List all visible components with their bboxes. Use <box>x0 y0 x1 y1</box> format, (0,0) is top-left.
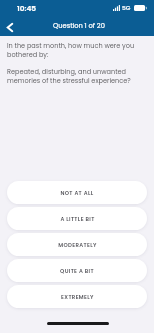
staticText: EXTREMELY <box>61 293 94 301</box>
button[interactable]: NOT AT ALL <box>7 181 147 204</box>
button[interactable]: Back <box>1 18 19 36</box>
staticText: Question 1 of 20 <box>53 21 105 30</box>
staticText: A LITTLE BIT <box>60 215 95 223</box>
staticText: 5G <box>122 4 131 12</box>
button[interactable]: A LITTLE BIT <box>7 207 147 230</box>
button[interactable]: MODERATELY <box>7 233 147 256</box>
staticText: NOT AT ALL <box>60 189 94 197</box>
button[interactable]: EXTREMELY <box>7 285 147 308</box>
staticText: MODERATELY <box>58 241 97 249</box>
staticText: 10:45 <box>17 3 37 13</box>
staticText: QUITE A BIT <box>60 267 94 275</box>
staticText: In the past month, how much were you bot… <box>7 41 147 59</box>
button[interactable]: QUITE A BIT <box>7 259 147 282</box>
staticText: Repeated, disturbing, and unwanted memor… <box>7 67 147 85</box>
